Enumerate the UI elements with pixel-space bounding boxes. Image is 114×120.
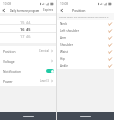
staticText: Notification bbox=[3, 69, 22, 73]
staticText: Left shoulder bbox=[60, 29, 79, 33]
button[interactable]: Shoulder bbox=[57, 41, 114, 48]
staticText: Ankle bbox=[60, 64, 68, 68]
staticText: Hip bbox=[60, 57, 65, 61]
staticText: Neck bbox=[60, 22, 68, 26]
staticText: Waist bbox=[60, 50, 68, 54]
staticText: 15 bbox=[20, 20, 25, 25]
staticText: Expires bbox=[43, 8, 54, 12]
button[interactable]: Ankle bbox=[57, 62, 114, 69]
button[interactable]: Neck bbox=[57, 20, 114, 27]
staticText: 45 bbox=[26, 27, 31, 32]
button[interactable]: Power bbox=[0, 76, 56, 86]
staticText: 10:08 bbox=[60, 2, 69, 6]
staticText: 44 bbox=[26, 20, 31, 25]
button[interactable]: Hip bbox=[57, 55, 114, 62]
staticText: Arm bbox=[60, 36, 67, 40]
other: Back bbox=[1, 8, 6, 13]
button[interactable]: Back bbox=[1, 8, 6, 13]
staticText: Position bbox=[3, 49, 16, 53]
staticText: Position bbox=[72, 8, 86, 13]
button[interactable]: Notification bbox=[0, 66, 56, 76]
staticText: 10:08 bbox=[3, 2, 12, 6]
button[interactable]: Back bbox=[59, 8, 64, 13]
staticText: 17 bbox=[20, 34, 25, 39]
staticText: 16 bbox=[20, 27, 25, 32]
other: Back bbox=[59, 8, 64, 13]
staticText: 46 bbox=[26, 34, 31, 39]
button[interactable]: Position bbox=[0, 46, 56, 56]
staticText: Shoulder bbox=[60, 43, 73, 47]
staticText: Daily hormone program bbox=[10, 9, 40, 12]
staticText: Power bbox=[3, 79, 13, 83]
staticText: Voltage bbox=[3, 59, 15, 63]
button[interactable]: Expires bbox=[43, 8, 54, 12]
button[interactable]: Waist bbox=[57, 48, 114, 55]
button[interactable]: Voltage bbox=[0, 56, 56, 66]
staticText: Please select the position where the dev… bbox=[59, 15, 114, 18]
button[interactable]: Left shoulder bbox=[57, 27, 114, 34]
button[interactable]: Arm bbox=[57, 34, 114, 41]
staticText: Level 3 bbox=[40, 79, 49, 83]
staticText: Cervical bbox=[39, 49, 49, 53]
